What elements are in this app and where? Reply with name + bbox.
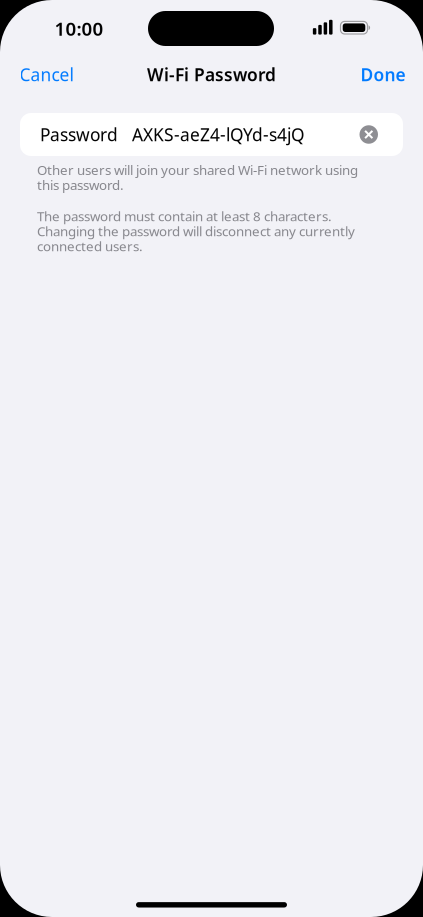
staticText: Other users will join your shared Wi-Fi … [37, 161, 358, 194]
staticText: The password must contain at least 8 cha… [37, 207, 355, 255]
staticText: Cancel [19, 63, 73, 86]
button[interactable]: Cancel [19, 63, 73, 86]
staticText: Password [40, 123, 118, 146]
staticText: Wi-Fi Password [147, 63, 276, 86]
staticText: AXKS-aeZ4-lQYd-s4jQ [132, 123, 305, 146]
button[interactable]: Done [360, 63, 405, 86]
staticText: Done [360, 63, 405, 86]
button[interactable]: Password field [20, 113, 403, 156]
staticText: 10:00 [54, 16, 103, 41]
button[interactable]: Clear text [359, 125, 378, 144]
